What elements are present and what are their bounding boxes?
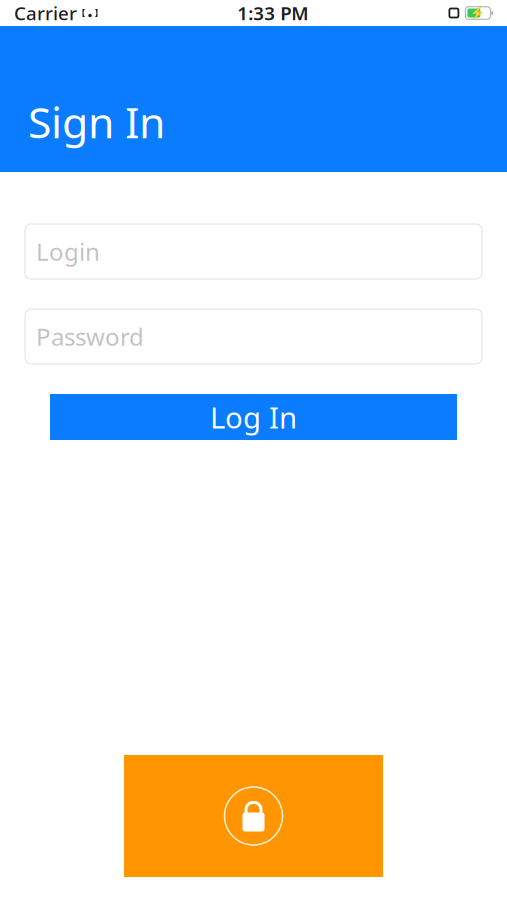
button[interactable]: Log In (50, 394, 457, 440)
staticText: Login (36, 236, 100, 267)
staticText: 1:33 PM (237, 1, 308, 25)
staticText: Carrier (14, 1, 77, 25)
button[interactable]: Unlock with passcode (124, 755, 383, 877)
staticText: Log In (210, 397, 297, 436)
staticText: Sign In (28, 93, 165, 150)
staticText: ⚡ (470, 6, 485, 20)
staticText: Password (36, 321, 144, 352)
